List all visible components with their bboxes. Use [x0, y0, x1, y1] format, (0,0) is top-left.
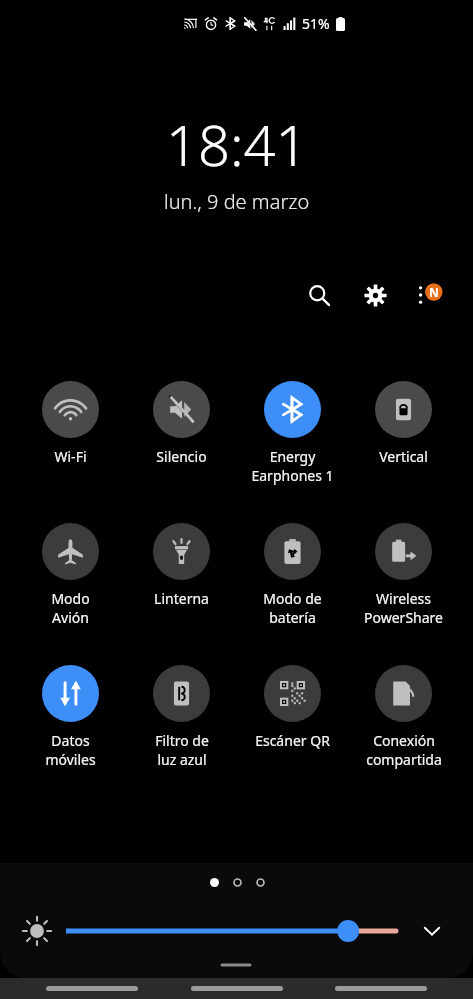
- staticText: Conexión compartida: [366, 731, 442, 769]
- button[interactable]: Navigation: [335, 986, 427, 991]
- staticText: Wireless PowerShare: [364, 589, 443, 627]
- button[interactable]: Datos móviles: [14, 665, 126, 769]
- button[interactable]: Vertical: [348, 381, 459, 466]
- staticText: Silencio: [156, 447, 207, 466]
- button[interactable]: Navigation: [46, 986, 138, 991]
- button[interactable]: Navigation: [191, 986, 283, 991]
- button[interactable]: Linterna: [126, 523, 237, 608]
- staticText: N: [429, 284, 439, 300]
- staticText: Modo Avión: [51, 589, 90, 627]
- button[interactable]: Escáner QR: [237, 665, 348, 750]
- staticText: Vertical: [379, 447, 428, 466]
- button[interactable]: Wireless PowerShare: [348, 523, 459, 627]
- staticText: Escáner QR: [255, 731, 330, 750]
- button[interactable]: Expand: [412, 911, 452, 951]
- button[interactable]: Modo Avión: [14, 523, 126, 627]
- button[interactable]: Energy Earphones 1: [237, 381, 348, 485]
- staticText: 51%: [302, 14, 330, 33]
- button[interactable]: Brightness slider: [66, 919, 396, 943]
- button[interactable]: More options: [407, 273, 451, 317]
- button[interactable]: Filtro de luz azul: [126, 665, 237, 769]
- button[interactable]: Conexión compartida: [348, 665, 459, 769]
- staticText: Wi-Fi: [54, 447, 87, 466]
- staticText: Datos móviles: [45, 731, 96, 769]
- staticText: lun., 9 de marzo: [164, 188, 310, 215]
- staticText: Modo de batería: [263, 589, 322, 627]
- button[interactable]: Brightness: [22, 916, 52, 946]
- staticText: Linterna: [154, 589, 209, 608]
- staticText: Energy Earphones 1: [251, 447, 334, 485]
- staticText: Filtro de luz azul: [155, 731, 209, 769]
- button[interactable]: Settings: [353, 273, 397, 317]
- button[interactable]: Silencio: [126, 381, 237, 466]
- button[interactable]: Search: [297, 273, 341, 317]
- button[interactable]: Wi-Fi: [14, 381, 126, 466]
- button[interactable]: Modo de batería: [237, 523, 348, 627]
- staticText: 18:41: [166, 106, 308, 182]
